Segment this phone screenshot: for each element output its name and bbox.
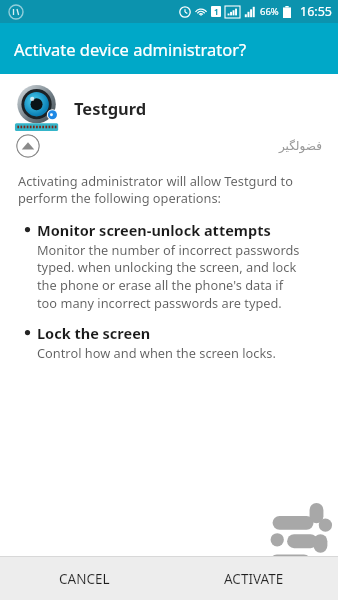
button[interactable]: CANCEL: [0, 557, 169, 600]
staticText: فضولگیر: [279, 139, 322, 153]
staticText: 1: [214, 6, 219, 17]
button[interactable]: Expand details: [16, 134, 40, 158]
staticText: ACTIVATE: [224, 570, 284, 588]
staticText: 66%: [260, 5, 279, 18]
button[interactable]: ACTIVATE: [169, 557, 338, 600]
staticText: 16:55: [300, 3, 332, 20]
staticText: Monitor the number of incorrect password…: [37, 241, 300, 311]
staticText: Control how and when the screen locks.: [37, 344, 276, 361]
staticText: Testgurd: [74, 97, 147, 119]
staticText: Activate device administrator?: [14, 38, 247, 60]
staticText: Monitor screen-unlock attempts: [37, 220, 271, 240]
staticText: Activating administrator will allow Test…: [18, 172, 293, 206]
staticText: CANCEL: [59, 570, 110, 588]
staticText: Lock the screen: [37, 323, 151, 343]
